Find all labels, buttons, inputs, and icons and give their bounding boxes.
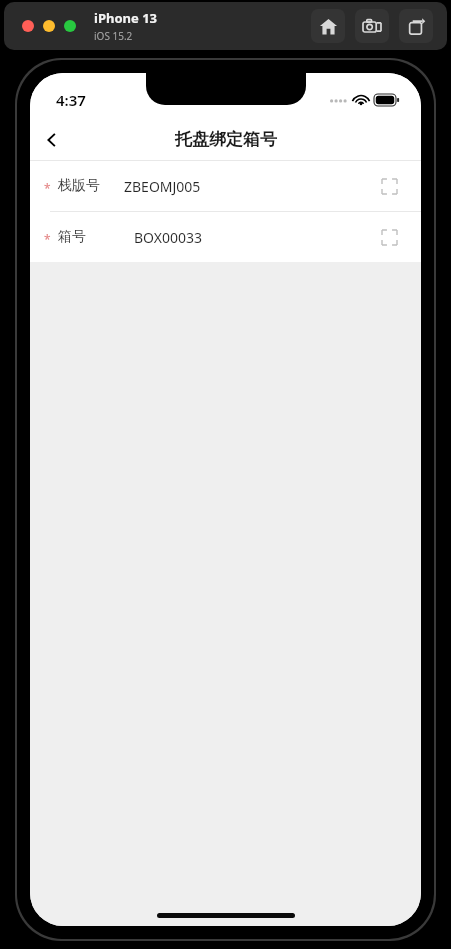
button[interactable]: Home xyxy=(311,9,345,43)
button[interactable]: Screenshot xyxy=(355,9,389,43)
button[interactable]: Minimize xyxy=(43,20,55,32)
button[interactable]: * xyxy=(30,212,421,262)
button[interactable]: Scan 栈版号 xyxy=(375,172,403,200)
button[interactable]: Scan 箱号 xyxy=(375,223,403,251)
staticText: BOX00033 xyxy=(134,228,375,247)
staticText: 4:37 xyxy=(56,90,86,110)
staticText: iPhone 13 xyxy=(94,9,157,27)
staticText: 托盘绑定箱号 xyxy=(175,129,277,150)
staticText: * xyxy=(44,180,51,196)
staticText: ZBEOMJ005 xyxy=(124,177,375,196)
staticText: 栈版号 xyxy=(58,177,100,195)
staticText: * xyxy=(44,231,51,247)
button[interactable]: Close xyxy=(22,20,34,32)
button[interactable]: * xyxy=(30,161,421,211)
button[interactable]: Zoom xyxy=(64,20,76,32)
staticText: 箱号 xyxy=(58,228,86,246)
button[interactable]: Rotate xyxy=(399,9,433,43)
button[interactable]: Back xyxy=(30,119,74,160)
staticText: iOS 15.2 xyxy=(94,29,133,43)
